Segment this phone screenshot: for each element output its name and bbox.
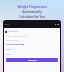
- button[interactable]: Calculate: [6, 58, 58, 62]
- staticText: Calculated for You: [19, 15, 45, 19]
- staticText: Weight: [6, 48, 13, 51]
- staticText: Calculate: [28, 59, 37, 62]
- staticText: The One Rep Max: [6, 43, 25, 46]
- staticText: Weight Progression: [17, 5, 47, 9]
- staticText: 9:41: [5, 23, 9, 26]
- staticText: Calculator: [8, 30, 18, 33]
- staticText: lbs kg Epley: [6, 39, 19, 42]
- staticText: Weight Reps Formula: [6, 35, 27, 38]
- staticText: Reps: [6, 53, 11, 56]
- staticText: Automatically: [22, 10, 42, 14]
